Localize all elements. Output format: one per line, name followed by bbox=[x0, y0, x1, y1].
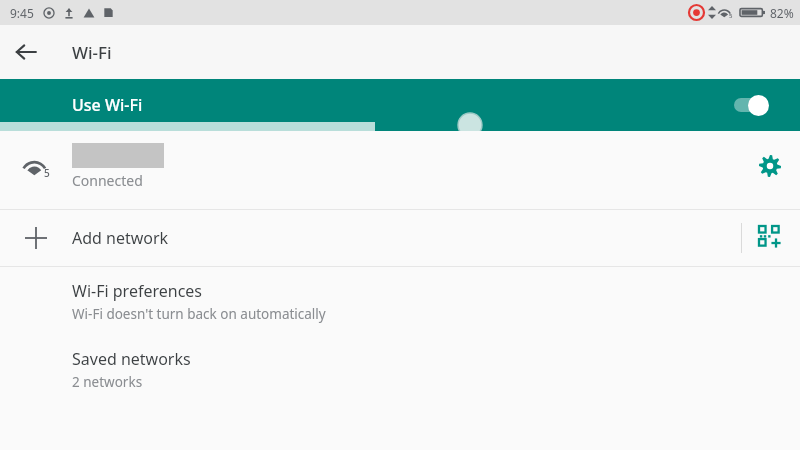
button[interactable]: Add network bbox=[0, 210, 800, 266]
staticText: Add network bbox=[72, 227, 169, 249]
staticText: 2 networks bbox=[72, 373, 143, 391]
staticText: 5 bbox=[729, 12, 733, 20]
staticText: Wi-Fi doesn't turn back on automatically bbox=[72, 305, 326, 323]
button[interactable]: Network settings bbox=[740, 136, 800, 196]
staticText: 5 bbox=[44, 166, 50, 180]
staticText: Connected bbox=[72, 171, 143, 190]
button[interactable]: Scan QR code bbox=[742, 210, 800, 266]
staticText: 82% bbox=[770, 5, 794, 21]
staticText: Use Wi-Fi bbox=[72, 94, 143, 116]
button[interactable]: Saved networks bbox=[0, 335, 800, 403]
staticText: Wi-Fi bbox=[72, 41, 112, 64]
button[interactable]: 5 bbox=[0, 131, 800, 201]
button[interactable]: Wi-Fi preferences bbox=[0, 267, 800, 335]
button[interactable]: Use Wi-Fi bbox=[0, 79, 800, 131]
button[interactable]: Back bbox=[0, 26, 52, 78]
staticText: Saved networks bbox=[72, 348, 191, 370]
staticText: Wi-Fi preferences bbox=[72, 280, 203, 302]
staticText: 9:45 bbox=[10, 5, 34, 21]
